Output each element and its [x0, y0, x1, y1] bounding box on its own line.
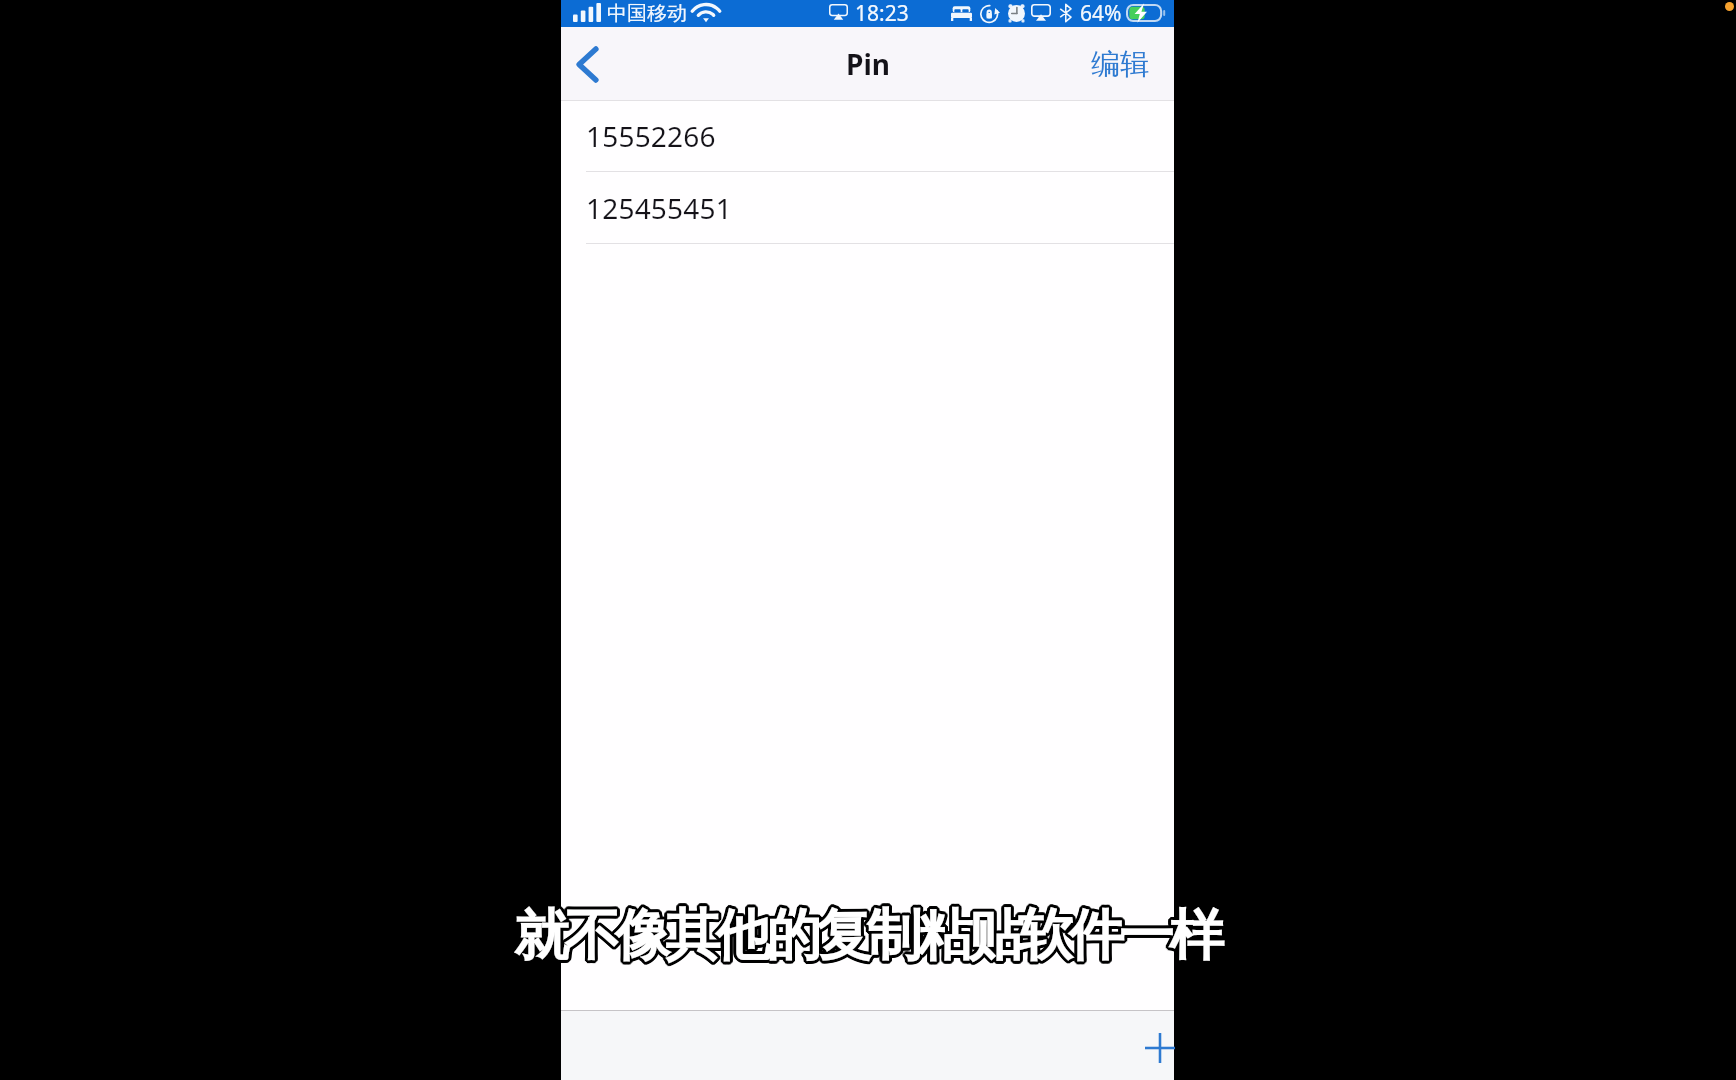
button[interactable]: 15552266 [561, 101, 1174, 172]
staticText: 就不像其他的复制粘贴软件一样 [513, 903, 1219, 972]
staticText: 就不像其他的复制粘贴软件一样 [511, 901, 1217, 970]
staticText: 就不像其他的复制粘贴软件一样 [515, 903, 1221, 972]
staticText: 就不像其他的复制粘贴软件一样 [517, 901, 1223, 970]
staticText: 就不像其他的复制粘贴软件一样 [517, 902, 1223, 971]
staticText: 就不像其他的复制粘贴软件一样 [515, 902, 1221, 971]
staticText: 就不像其他的复制粘贴软件一样 [516, 899, 1222, 968]
staticText: 就不像其他的复制粘贴软件一样 [514, 900, 1220, 969]
staticText: 就不像其他的复制粘贴软件一样 [514, 904, 1220, 973]
staticText: 中国移动 [607, 1, 687, 26]
staticText: Pin [846, 45, 890, 83]
staticText: 就不像其他的复制粘贴软件一样 [513, 898, 1219, 967]
staticText: 就不像其他的复制粘贴软件一样 [517, 900, 1223, 969]
staticText: 就不像其他的复制粘贴软件一样 [511, 900, 1217, 969]
staticText: 就不像其他的复制粘贴软件一样 [516, 900, 1222, 969]
staticText: 编辑 [1091, 46, 1149, 83]
button[interactable]: Add [1131, 1019, 1189, 1077]
staticText: 125455451 [586, 189, 732, 227]
staticText: 就不像其他的复制粘贴软件一样 [516, 902, 1222, 971]
staticText: 就不像其他的复制粘贴软件一样 [514, 902, 1220, 971]
staticText: 64% [1080, 0, 1122, 26]
staticText: 就不像其他的复制粘贴软件一样 [516, 901, 1222, 970]
button[interactable]: 编辑 [1073, 27, 1174, 101]
staticText: 就不像其他的复制粘贴软件一样 [512, 902, 1218, 971]
staticText: 就不像其他的复制粘贴软件一样 [514, 903, 1220, 972]
staticText: 就不像其他的复制粘贴软件一样 [515, 899, 1221, 968]
staticText: 就不像其他的复制粘贴软件一样 [512, 901, 1218, 970]
staticText: 就不像其他的复制粘贴软件一样 [513, 901, 1219, 970]
staticText: 就不像其他的复制粘贴软件一样 [513, 904, 1219, 973]
staticText: 就不像其他的复制粘贴软件一样 [512, 900, 1218, 969]
staticText: 就不像其他的复制粘贴软件一样 [516, 903, 1222, 972]
staticText: 就不像其他的复制粘贴软件一样 [512, 899, 1218, 968]
staticText: 就不像其他的复制粘贴软件一样 [514, 901, 1220, 970]
staticText: 就不像其他的复制粘贴软件一样 [515, 901, 1221, 970]
staticText: 就不像其他的复制粘贴软件一样 [515, 898, 1221, 967]
staticText: 就不像其他的复制粘贴软件一样 [514, 898, 1220, 967]
staticText: 15552266 [586, 117, 716, 155]
staticText: 就不像其他的复制粘贴软件一样 [513, 899, 1219, 968]
button[interactable]: Back [561, 27, 613, 101]
staticText: 就不像其他的复制粘贴软件一样 [515, 900, 1221, 969]
staticText: 就不像其他的复制粘贴软件一样 [515, 904, 1221, 973]
button[interactable]: 125455451 [561, 172, 1174, 244]
staticText: 就不像其他的复制粘贴软件一样 [513, 900, 1219, 969]
staticText: 就不像其他的复制粘贴软件一样 [511, 902, 1217, 971]
staticText: 18:23 [855, 0, 909, 26]
staticText: 就不像其他的复制粘贴软件一样 [514, 899, 1220, 968]
staticText: 就不像其他的复制粘贴软件一样 [512, 903, 1218, 972]
staticText: 就不像其他的复制粘贴软件一样 [513, 902, 1219, 971]
